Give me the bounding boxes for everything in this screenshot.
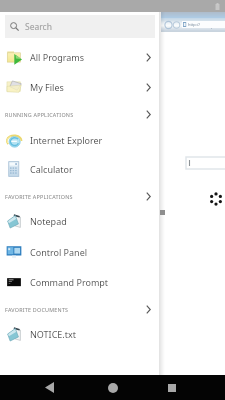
staticText: http://www.example.com xyxy=(188,22,225,29)
button[interactable]: Control Panel xyxy=(0,237,159,267)
staticText: All Programs xyxy=(30,51,85,63)
button[interactable]: Internet Explorer xyxy=(0,125,159,155)
staticText: My Files xyxy=(30,81,64,93)
button[interactable]: NOTICE.txt xyxy=(0,319,159,349)
button[interactable]: FAVORITE DOCUMENTS xyxy=(0,298,159,320)
staticText: RUNNING APPLICATIONS xyxy=(5,111,74,118)
button[interactable]: Calculator xyxy=(0,154,159,184)
staticText: Search xyxy=(25,21,52,33)
staticText: FAVORITE APPLICATIONS xyxy=(5,193,73,200)
staticText: Command Prompt xyxy=(30,276,109,288)
staticText: Calculator xyxy=(30,163,73,175)
button[interactable]: RUNNING APPLICATIONS xyxy=(0,103,159,125)
button[interactable]: Recents xyxy=(159,375,184,400)
button[interactable]: FAVORITE APPLICATIONS xyxy=(0,185,159,207)
staticText: NOTICE.txt xyxy=(30,328,77,340)
staticText: Internet Explorer xyxy=(30,134,103,146)
button[interactable]: Notepad xyxy=(0,206,159,236)
button[interactable]: Home xyxy=(100,375,125,400)
button[interactable]: My Files xyxy=(0,72,159,102)
staticText: Notepad xyxy=(30,215,67,227)
button[interactable]: Search xyxy=(5,15,155,38)
staticText: Control Panel xyxy=(30,246,88,258)
button[interactable]: Back xyxy=(37,375,62,400)
staticText: FAVORITE DOCUMENTS xyxy=(5,306,69,313)
button[interactable]: All Programs xyxy=(0,42,159,72)
button[interactable]: Command Prompt xyxy=(0,267,159,297)
